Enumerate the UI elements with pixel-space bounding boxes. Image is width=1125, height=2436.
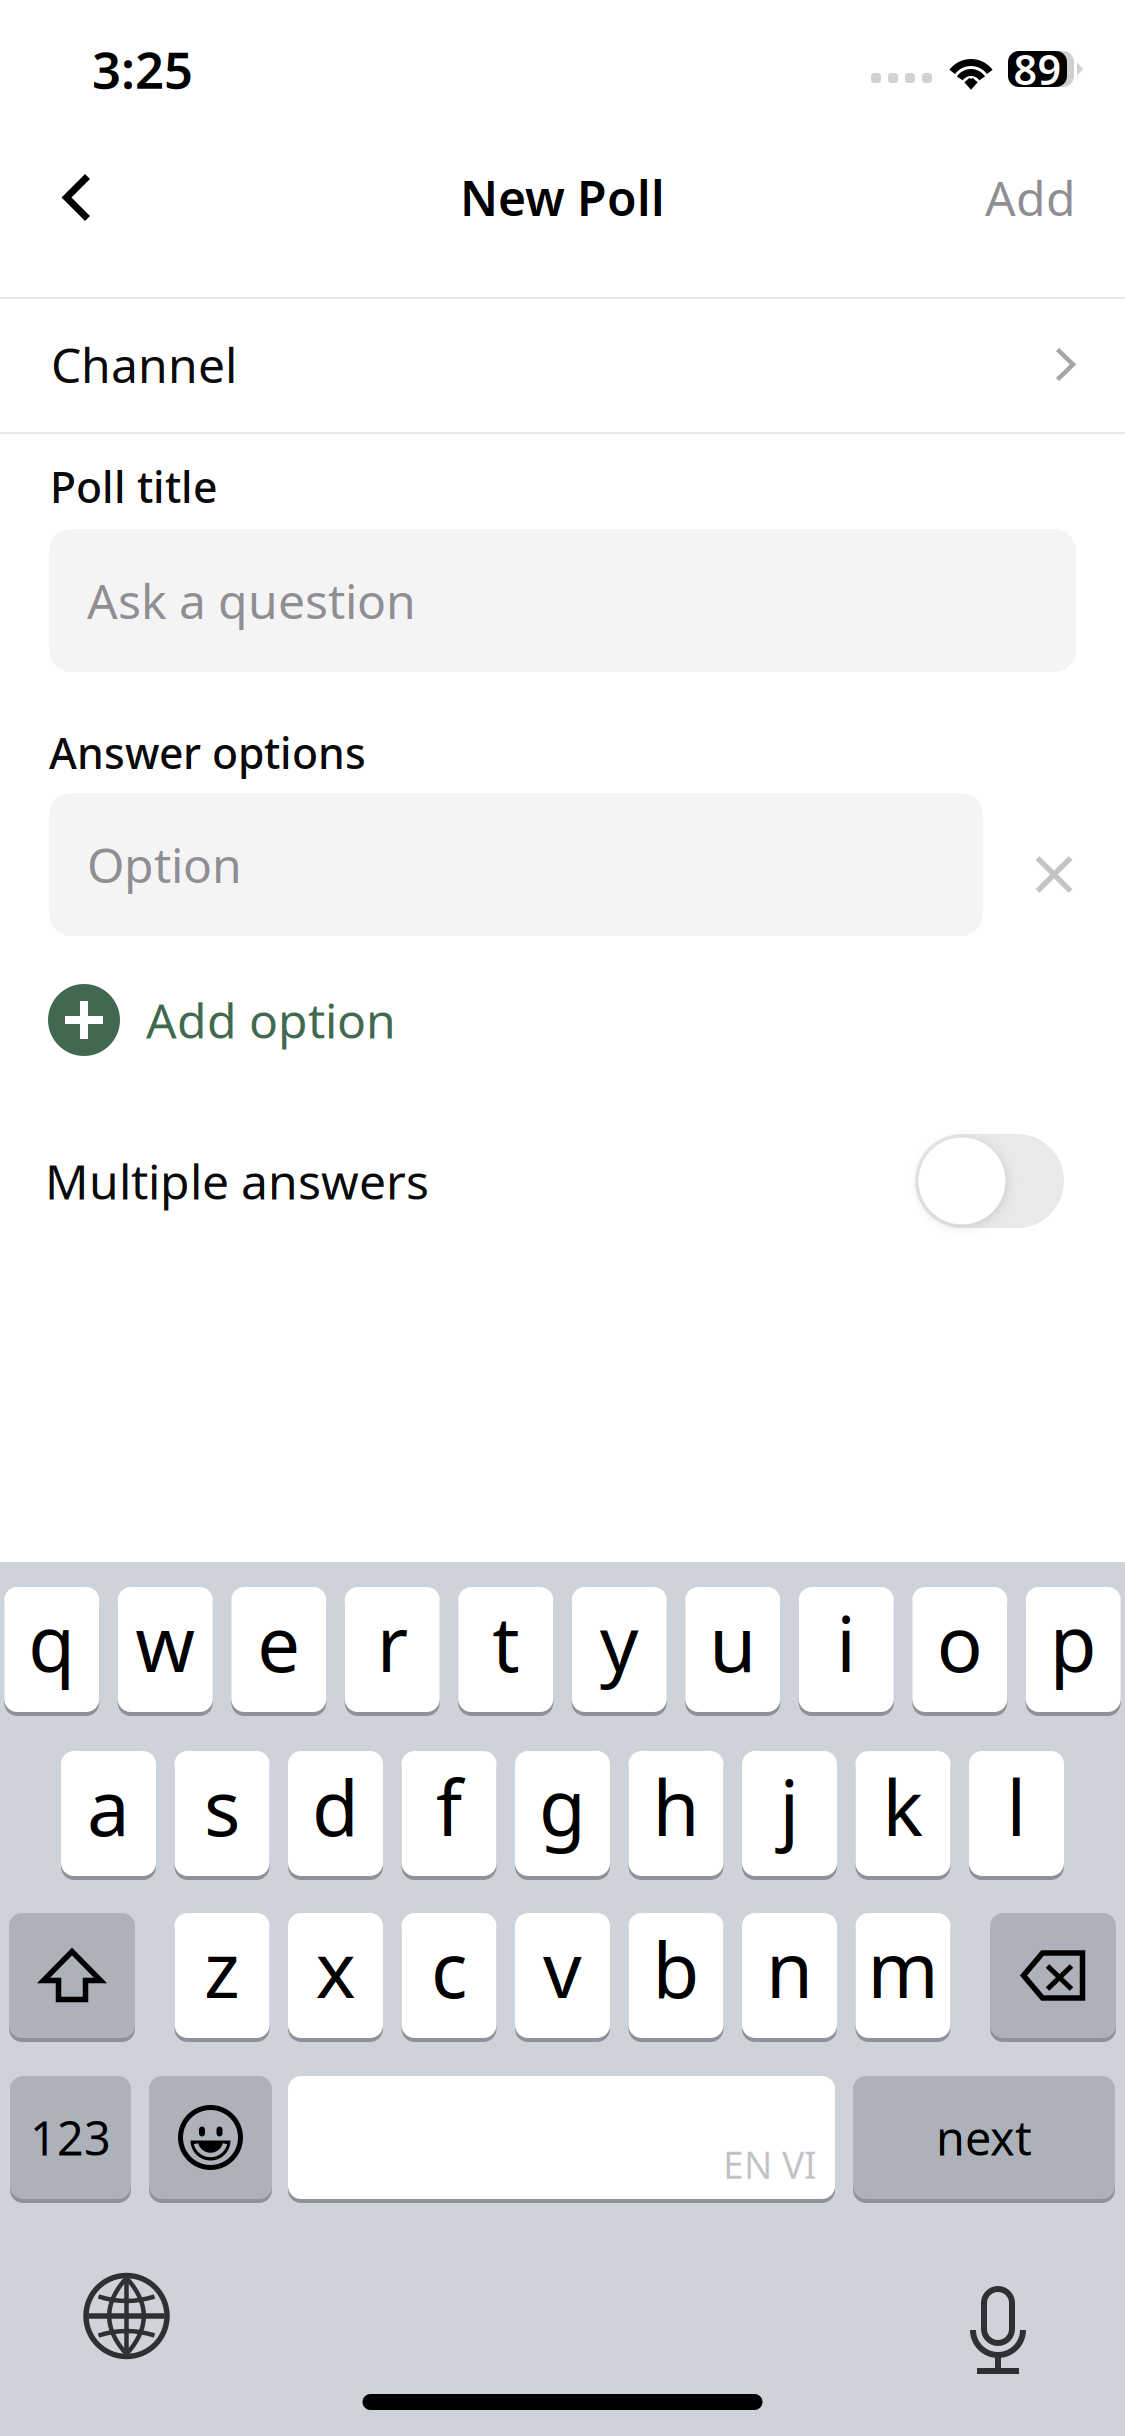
button[interactable]: d [288, 1749, 383, 1878]
staticText: e [257, 1592, 300, 1693]
button[interactable]: next [853, 2074, 1115, 2201]
staticText: Answer options [49, 724, 366, 781]
button[interactable]: Shift [9, 1911, 135, 2040]
staticText: Channel [51, 333, 237, 396]
staticText: New Poll [460, 166, 665, 229]
button[interactable]: g [515, 1749, 610, 1878]
button[interactable]: Multiple answers [915, 1134, 1064, 1228]
staticText: Add [985, 166, 1076, 229]
staticText: Add option [146, 988, 396, 1052]
button[interactable]: Delete [990, 1911, 1116, 2040]
button[interactable]: y [572, 1585, 667, 1714]
staticText: v [543, 1918, 582, 2019]
button[interactable]: o [912, 1585, 1007, 1714]
button[interactable]: e [231, 1585, 326, 1714]
staticText: p [1050, 1592, 1097, 1693]
staticText: l [1006, 1756, 1026, 1857]
staticText: k [882, 1756, 923, 1857]
staticText: next [936, 2106, 1032, 2168]
staticText: s [204, 1756, 240, 1857]
staticText: h [652, 1756, 699, 1857]
button[interactable]: t [458, 1585, 553, 1714]
staticText: Ask a question [87, 569, 416, 632]
button[interactable]: Remove option [983, 793, 1079, 936]
button[interactable]: i [799, 1585, 894, 1714]
staticText: w [135, 1592, 195, 1693]
staticText: r [377, 1592, 408, 1693]
staticText: t [492, 1592, 519, 1693]
button[interactable]: Emoji [149, 2074, 272, 2201]
staticText: 3:25 [92, 35, 193, 103]
staticText: EN VI [723, 2139, 817, 2189]
button[interactable]: Add option [48, 984, 396, 1056]
staticText: 123 [30, 2106, 111, 2168]
button[interactable]: z [174, 1911, 269, 2040]
button[interactable]: Next keyboard [86, 2275, 167, 2356]
button[interactable]: h [628, 1749, 723, 1878]
button[interactable]: Channel [0, 297, 1125, 432]
button[interactable]: n [742, 1911, 837, 2040]
staticText: q [28, 1592, 75, 1693]
button[interactable]: b [628, 1911, 723, 2040]
button[interactable]: Add [961, 147, 1076, 247]
button[interactable]: k [855, 1749, 950, 1878]
button[interactable]: u [685, 1585, 780, 1714]
button[interactable]: Back [35, 147, 119, 247]
button[interactable]: s [174, 1749, 269, 1878]
staticText: Option [87, 833, 242, 896]
button[interactable]: c [401, 1911, 496, 2040]
button[interactable]: m [855, 1911, 950, 2040]
staticText: j [779, 1756, 799, 1857]
staticText: m [867, 1918, 938, 2019]
staticText: y [600, 1592, 639, 1693]
button[interactable]: 123 [10, 2074, 131, 2201]
staticText: i [836, 1592, 856, 1693]
staticText: c [431, 1918, 467, 2019]
staticText: d [312, 1756, 359, 1857]
button[interactable]: p [1026, 1585, 1121, 1714]
button[interactable]: a [61, 1749, 156, 1878]
button[interactable]: f [401, 1749, 496, 1878]
button[interactable]: Dictation [970, 2275, 1026, 2357]
staticText: b [652, 1918, 699, 2019]
staticText: z [204, 1918, 240, 2019]
staticText: Multiple answers [45, 1149, 429, 1213]
staticText: u [709, 1592, 756, 1693]
staticText: g [539, 1756, 586, 1857]
staticText: Poll title [50, 458, 217, 515]
staticText: 89 [1013, 42, 1061, 96]
button[interactable]: l [969, 1749, 1064, 1878]
staticText: f [436, 1756, 462, 1857]
staticText: n [766, 1918, 813, 2019]
button[interactable]: v [515, 1911, 610, 2040]
button[interactable]: q [4, 1585, 99, 1714]
staticText: o [937, 1592, 983, 1693]
button[interactable]: r [345, 1585, 440, 1714]
button[interactable]: j [742, 1749, 837, 1878]
button[interactable]: x [288, 1911, 383, 2040]
button[interactable]: w [118, 1585, 213, 1714]
staticText: x [315, 1918, 355, 2019]
button[interactable]: space [288, 2074, 835, 2201]
staticText: a [87, 1756, 130, 1857]
